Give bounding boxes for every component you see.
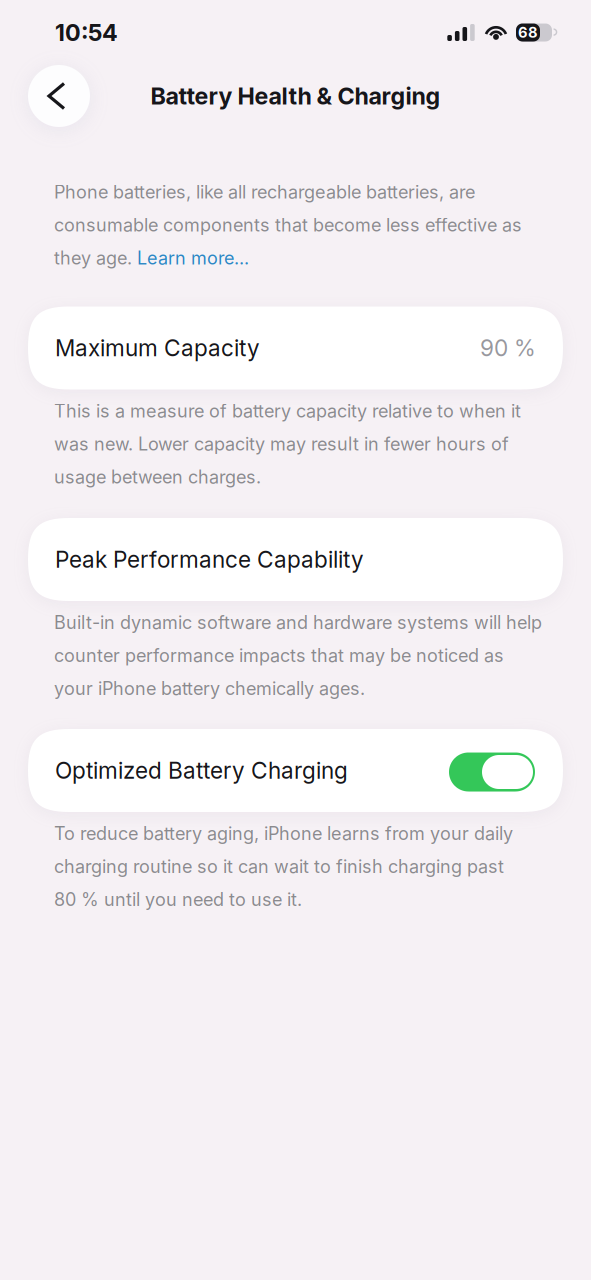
button[interactable]: Optimized Battery Charging, on xyxy=(449,749,536,791)
staticText: Optimized Battery Charging xyxy=(55,757,348,784)
staticText: Learn more... xyxy=(137,247,249,269)
staticText: your iPhone battery chemically ages. xyxy=(54,678,365,699)
staticText: This is a measure of battery capacity re… xyxy=(54,400,521,422)
staticText: usage between charges. xyxy=(54,466,261,488)
staticText: Peak Performance Capability xyxy=(55,546,364,573)
staticText: consumable components that become less e… xyxy=(54,214,522,236)
staticText: 90 % xyxy=(480,334,536,362)
button[interactable]: Back xyxy=(28,65,90,127)
staticText: charging routine so it can wait to finis… xyxy=(54,856,504,877)
staticText: 80 % until you need to use it. xyxy=(54,889,302,910)
button[interactable]: Maximum Capacity xyxy=(0,306,591,389)
staticText: Phone batteries, like all rechargeable b… xyxy=(54,181,475,203)
staticText: they age. xyxy=(54,247,137,269)
staticText: was new. Lower capacity may result in fe… xyxy=(54,433,509,455)
staticText: 10:54 xyxy=(55,18,118,47)
button[interactable]: Learn more... xyxy=(137,247,249,269)
staticText: 68 xyxy=(518,24,538,41)
staticText: Maximum Capacity xyxy=(55,334,260,362)
staticText: To reduce battery aging, iPhone learns f… xyxy=(54,823,513,844)
staticText: Battery Health & Charging xyxy=(150,82,440,110)
staticText: Built-in dynamic software and hardware s… xyxy=(54,612,542,633)
button[interactable]: Peak Performance Capability xyxy=(0,518,591,601)
staticText: counter performance impacts that may be … xyxy=(54,645,504,666)
button[interactable]: Optimized Battery Charging xyxy=(0,729,591,812)
